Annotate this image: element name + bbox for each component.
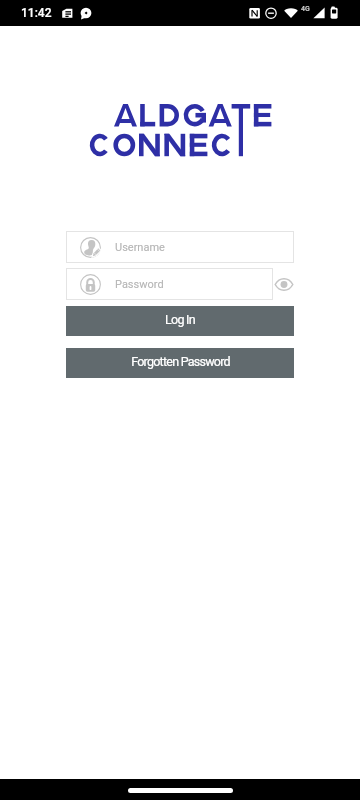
button[interactable]: Log In [66, 306, 294, 336]
staticText: Log In [165, 312, 195, 327]
button[interactable]: Password [66, 268, 273, 300]
button[interactable]: Username [66, 231, 294, 263]
button[interactable]: Forgotten Password [66, 348, 294, 378]
staticText: Forgotten Password [131, 354, 230, 369]
staticText: Password [115, 278, 164, 291]
staticText: 4G [301, 5, 310, 13]
staticText: Username [115, 241, 165, 254]
button[interactable]: Show password [274, 274, 294, 295]
staticText: 11:42 [21, 6, 52, 20]
